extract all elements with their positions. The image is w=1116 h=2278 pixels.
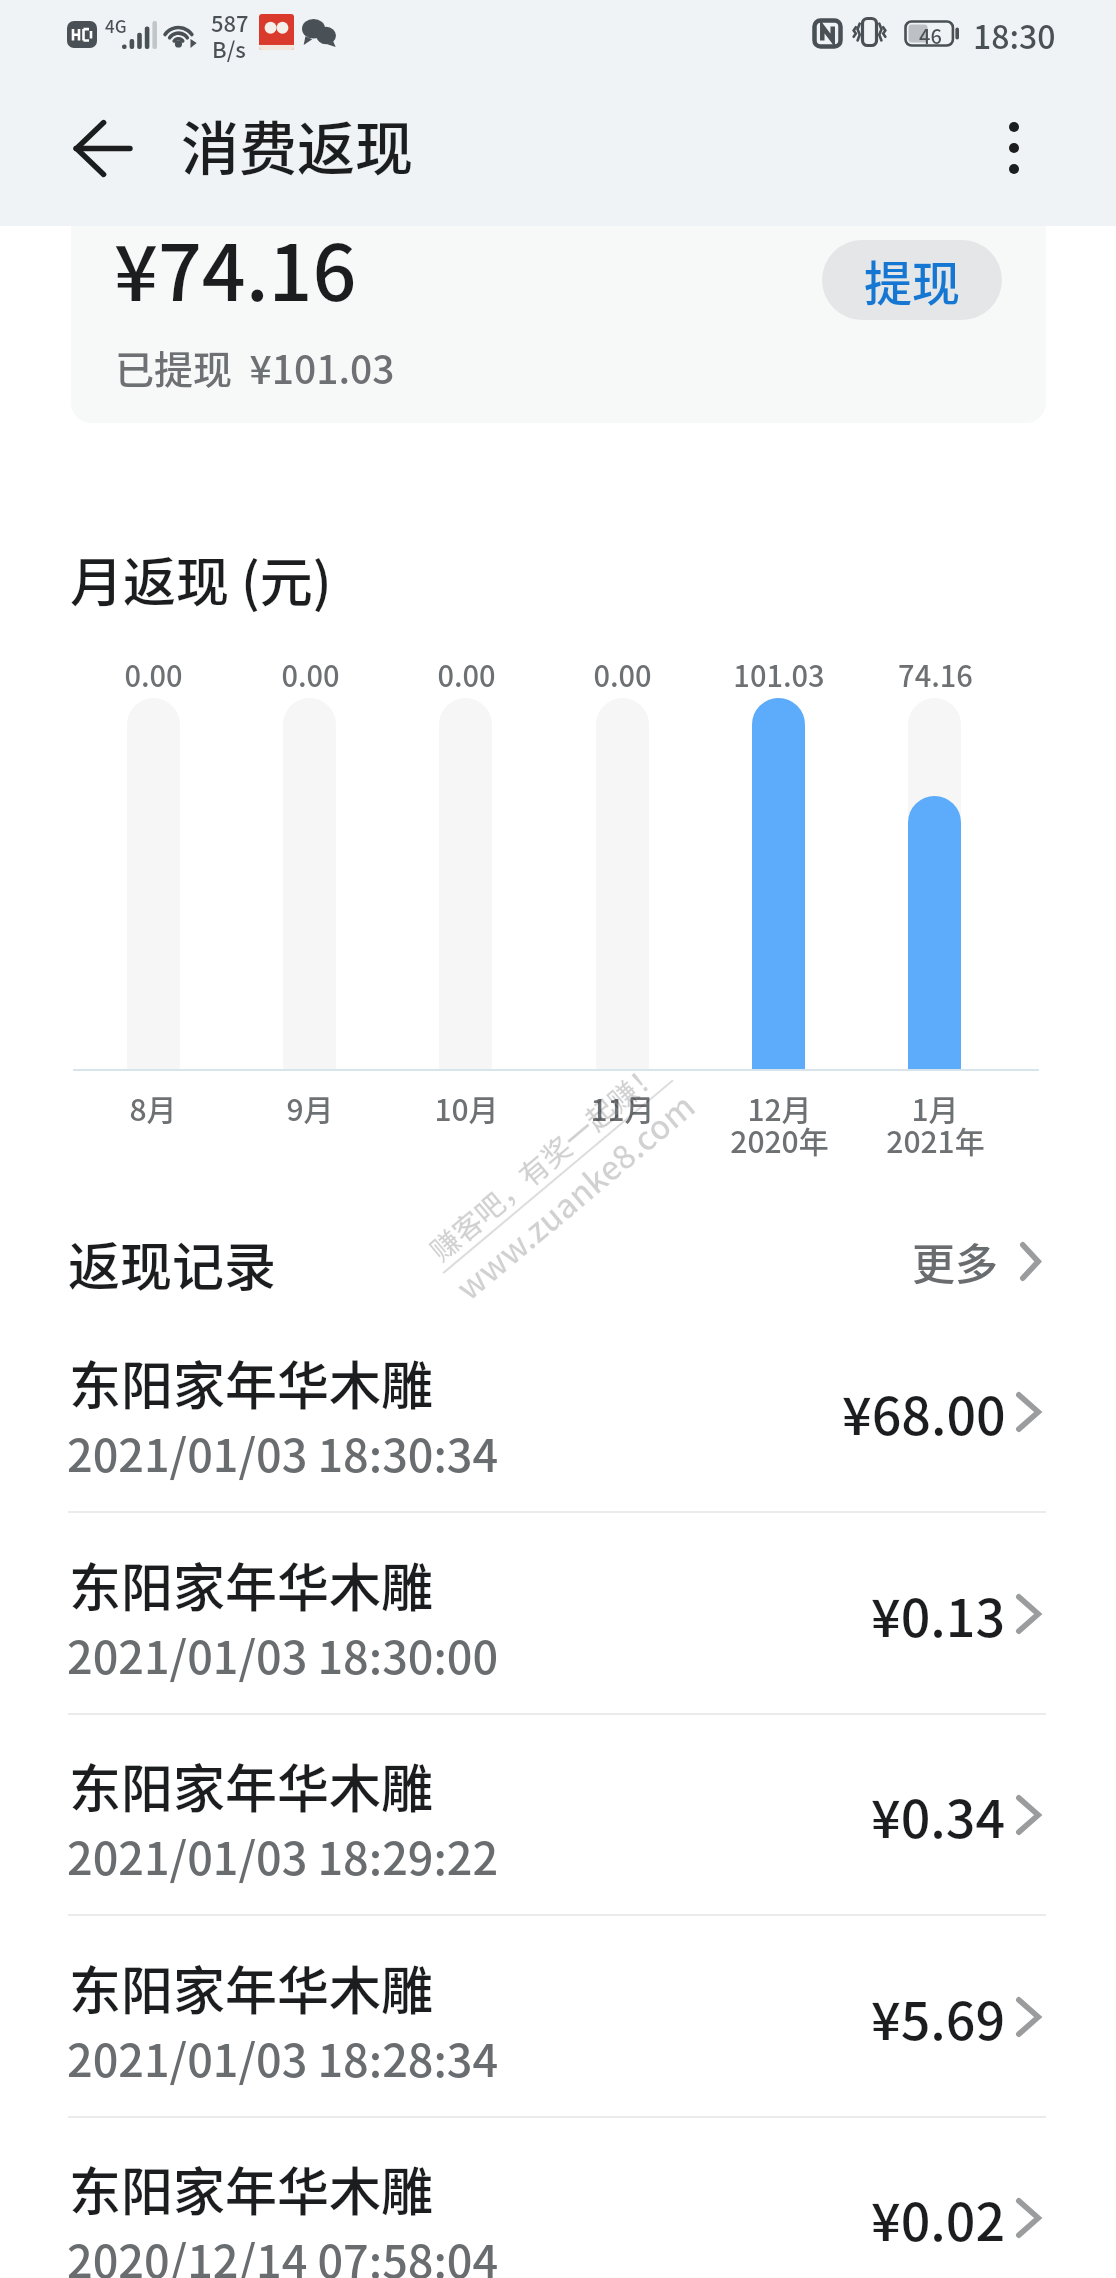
button[interactable]: 东阳家年华木雕 [0, 1933, 1116, 2133]
staticText: 0.00 [437, 653, 496, 695]
staticText: ¥74.16 [114, 226, 357, 323]
staticText: 1月 [911, 1086, 959, 1126]
button[interactable]: More options [964, 98, 1064, 198]
staticText: 消费返现 [181, 103, 414, 187]
staticText: 2021/01/03 18:30:34 [67, 1420, 499, 1485]
staticText: 8月 [129, 1086, 177, 1126]
button[interactable]: 东阳家年华木雕 [0, 1731, 1116, 1931]
staticText: 18:30 [973, 12, 1056, 58]
staticText: 东阳家年华木雕 [69, 1547, 434, 1622]
staticText: www.zuanke8.com [445, 1081, 704, 1310]
button[interactable]: 东阳家年华木雕 [0, 1530, 1116, 1730]
staticText: 0.00 [593, 653, 652, 695]
staticText: 东阳家年华木雕 [69, 1950, 434, 2025]
staticText: 10月 [434, 1086, 499, 1126]
staticText: 12月 [747, 1086, 812, 1126]
staticText: B/s [212, 32, 246, 64]
staticText: ¥0.02 [871, 2181, 1006, 2256]
button[interactable]: 东阳家年华木雕 [0, 1328, 1116, 1528]
staticText: 2020年 [730, 1118, 829, 1158]
staticText: 2021/01/03 18:29:22 [67, 1823, 499, 1888]
staticText: 101.03 [733, 653, 825, 695]
button[interactable]: 提现 [822, 240, 1002, 320]
staticText: 已提现 ¥101.03 [115, 339, 395, 395]
staticText: 返现记录 [68, 1226, 277, 1301]
staticText: 东阳家年华木雕 [69, 2151, 434, 2226]
staticText: ¥0.13 [871, 1577, 1006, 1652]
staticText: 4G [105, 13, 127, 38]
button[interactable]: Back [47, 93, 157, 203]
staticText: 月返现 (元) [70, 541, 332, 618]
staticText: 2021/01/03 18:28:34 [67, 2025, 499, 2090]
staticText: 0.00 [124, 653, 183, 695]
staticText: 46 [919, 21, 942, 48]
button[interactable]: 东阳家年华木雕 [0, 2134, 1116, 2278]
staticText: 2021年 [886, 1118, 985, 1158]
staticText: 赚客吧，有奖一起赚！ [419, 1050, 669, 1269]
staticText: 0.00 [281, 653, 340, 695]
staticText: 提现 [864, 245, 961, 315]
staticText: ¥5.69 [871, 1980, 1006, 2055]
staticText: ¥0.34 [871, 1778, 1006, 1853]
staticText: 东阳家年华木雕 [69, 1345, 434, 1420]
staticText: 东阳家年华木雕 [69, 1748, 434, 1823]
staticText: 74.16 [898, 653, 973, 695]
staticText: ¥68.00 [842, 1375, 1006, 1450]
staticText: 11月 [590, 1086, 655, 1126]
button[interactable]: 更多 [912, 1229, 1041, 1293]
staticText: 2020/12/14 07:58:04 [67, 2226, 499, 2278]
staticText: 2021/01/03 18:30:00 [67, 1622, 499, 1687]
staticText: 587 [211, 6, 249, 38]
staticText: 更多 [912, 1230, 998, 1292]
staticText: 9月 [286, 1086, 334, 1126]
